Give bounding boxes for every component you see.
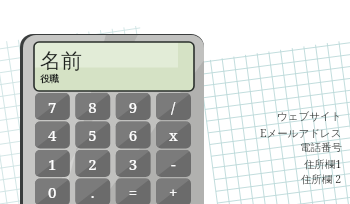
button[interactable]: Calculator business card preview	[0, 0, 350, 204]
